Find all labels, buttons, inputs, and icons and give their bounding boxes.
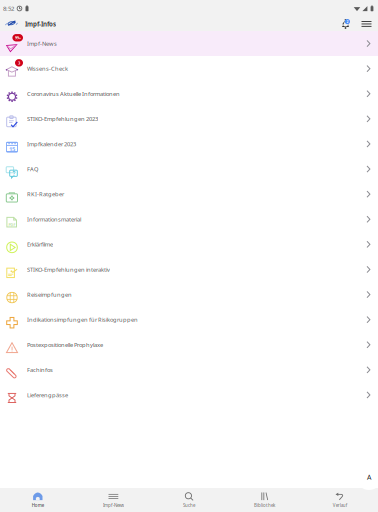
staticText: 99+ xyxy=(15,35,21,40)
button[interactable]: Impf-News xyxy=(76,488,151,512)
staticText: A xyxy=(367,472,371,482)
staticText: Verlauf xyxy=(333,502,348,508)
staticText: Impfkalender 2023 xyxy=(27,140,76,148)
staticText: Erklärfilme xyxy=(27,240,53,248)
staticText: Informationsmaterial xyxy=(27,215,81,223)
button[interactable]: Notifications xyxy=(340,19,355,29)
button[interactable]: Suche xyxy=(151,488,227,512)
staticText: 8:52 xyxy=(3,4,14,13)
staticText: Wissens-Check xyxy=(27,65,68,72)
staticText: Indikationsimpfungen für Risikogruppen xyxy=(27,316,138,323)
staticText: STIKO-Empfehlungen interaktiv xyxy=(27,265,110,273)
button[interactable]: 15 xyxy=(0,131,378,156)
staticText: Impf-Infos xyxy=(25,20,56,28)
staticText: Home xyxy=(32,502,44,508)
button[interactable]: Lieferengpässe xyxy=(0,382,378,407)
button[interactable]: Verlauf xyxy=(302,488,378,512)
staticText: Fachinfos xyxy=(27,366,53,374)
button[interactable]: PDF xyxy=(0,207,378,232)
button[interactable]: 3 xyxy=(0,56,378,81)
staticText: Suche xyxy=(183,502,195,508)
button[interactable]: STIKO-Empfehlungen interaktiv xyxy=(0,257,378,282)
button[interactable]: Home xyxy=(0,488,76,512)
button[interactable]: Fachinfos xyxy=(0,357,378,382)
button[interactable]: Bibliothek xyxy=(227,488,302,512)
staticText: PDF xyxy=(8,222,15,227)
staticText: STIKO-Empfehlungen 2023 xyxy=(27,115,98,123)
staticText: ? xyxy=(12,169,15,178)
staticText: Impf-News xyxy=(27,40,57,47)
staticText: 15 xyxy=(9,145,15,153)
staticText: Lieferengpässe xyxy=(27,391,68,399)
button[interactable]: RKI-Ratgeber xyxy=(0,182,378,207)
button[interactable]: Coronavirus Aktuelle Informationen xyxy=(0,81,378,106)
staticText: 2 xyxy=(346,19,348,24)
staticText: 3 xyxy=(18,60,20,66)
button[interactable]: Text size xyxy=(356,464,378,490)
button[interactable]: App logo xyxy=(0,18,18,29)
staticText: Reiseimpfungen xyxy=(27,291,72,298)
button[interactable]: ? xyxy=(0,156,378,182)
staticText: Postexpositionelle Prophylaxe xyxy=(27,341,103,349)
button[interactable]: Erklärfilme xyxy=(0,232,378,257)
button[interactable]: 99+ xyxy=(0,31,378,56)
button[interactable]: Postexpositionelle Prophylaxe xyxy=(0,332,378,357)
button[interactable]: Reiseimpfungen xyxy=(0,282,378,307)
staticText: Bibliothek xyxy=(254,502,275,508)
staticText: RKI-Ratgeber xyxy=(27,190,64,198)
staticText: Coronavirus Aktuelle Informationen xyxy=(27,90,120,98)
staticText: FAQ xyxy=(27,165,38,173)
button[interactable]: STIKO-Empfehlungen 2023 xyxy=(0,106,378,131)
button[interactable]: Menu xyxy=(355,19,378,28)
staticText: Impf-News xyxy=(103,502,124,508)
button[interactable]: Indikationsimpfungen für Risikogruppen xyxy=(0,307,378,332)
